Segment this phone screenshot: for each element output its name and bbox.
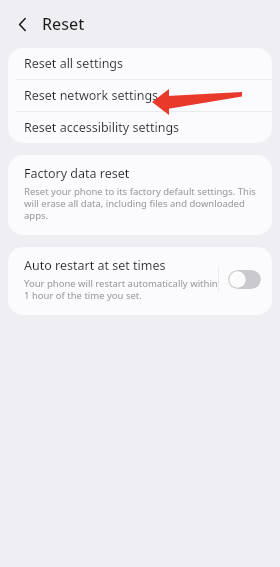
staticText: Your phone will restart automatically wi… <box>24 277 218 302</box>
staticText: Reset all settings <box>24 55 124 72</box>
staticText: Reset accessibility settings <box>24 119 180 136</box>
button[interactable]: Reset all settings <box>8 48 272 79</box>
staticText: Reset network settings <box>24 87 159 104</box>
button[interactable]: Reset network settings <box>8 80 272 111</box>
staticText: Auto restart at set times <box>24 257 166 274</box>
staticText: Reset your phone to its factory default … <box>24 185 258 222</box>
staticText: Reset <box>42 13 85 35</box>
button[interactable]: Reset accessibility settings <box>8 112 272 143</box>
button[interactable]: Auto restart at set times <box>8 247 272 315</box>
button[interactable]: Factory data reset <box>8 155 272 235</box>
button[interactable]: Back <box>7 9 37 39</box>
staticText: Factory data reset <box>24 165 130 182</box>
button[interactable]: Auto restart at set times toggle <box>228 270 261 289</box>
